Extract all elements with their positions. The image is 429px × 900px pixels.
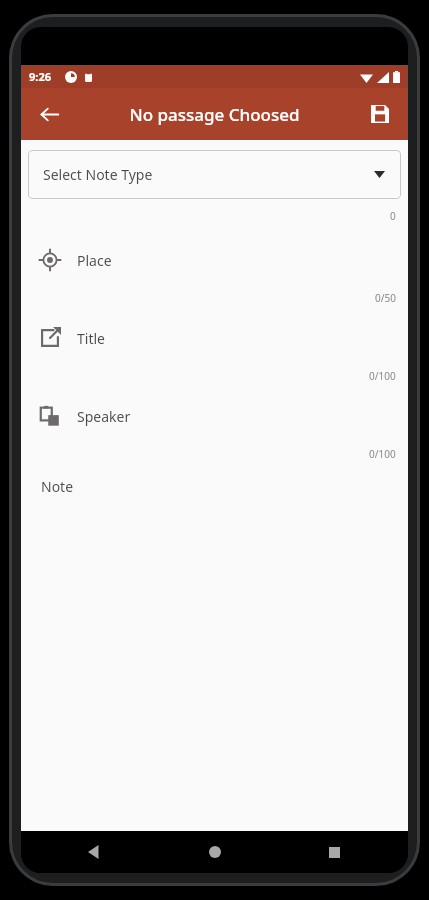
- button[interactable]: Speaker: [21, 399, 408, 433]
- staticText: Note: [41, 477, 74, 496]
- staticText: Speaker: [77, 407, 131, 426]
- button[interactable]: Title: [21, 321, 408, 355]
- staticText: 0/50: [375, 291, 396, 305]
- staticText: 0/100: [369, 369, 396, 383]
- button[interactable]: Back: [27, 92, 71, 136]
- button[interactable]: Recent apps: [314, 832, 354, 872]
- button[interactable]: Save: [358, 92, 402, 136]
- button[interactable]: Place: [21, 243, 408, 277]
- button[interactable]: Select Note Type: [28, 150, 401, 199]
- staticText: Select Note Type: [43, 165, 153, 184]
- staticText: Place: [77, 251, 112, 270]
- staticText: Title: [77, 329, 105, 348]
- staticText: 0: [390, 209, 396, 223]
- button[interactable]: Home: [195, 832, 235, 872]
- button[interactable]: Back: [75, 832, 115, 872]
- staticText: 9:26: [29, 69, 51, 84]
- staticText: No passage Choosed: [129, 103, 300, 126]
- staticText: 0/100: [369, 447, 396, 461]
